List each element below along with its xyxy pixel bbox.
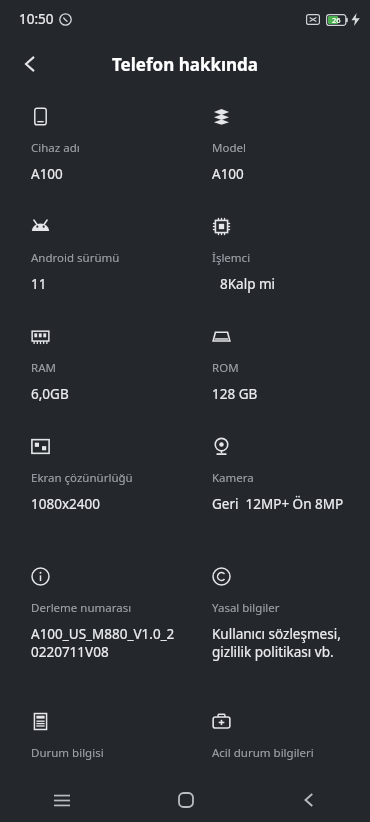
button[interactable]: Kamera	[212, 426, 362, 513]
staticText: 10:50	[19, 10, 54, 28]
staticText: İşlemci	[212, 250, 251, 266]
staticText: ROM	[212, 360, 239, 376]
button[interactable]: Ana ekran	[124, 778, 247, 822]
button[interactable]: Ekran çözünürlüğü	[31, 426, 177, 513]
staticText: Yasal bilgiler	[212, 600, 280, 616]
staticText: RAM	[31, 360, 56, 376]
staticText: 8Kalp mi	[220, 275, 276, 293]
staticText: A100	[212, 165, 244, 183]
staticText: Kamera	[212, 470, 254, 486]
staticText: Derleme numarası	[31, 600, 132, 616]
button[interactable]: ROM	[212, 316, 362, 403]
staticText: A100_US_M880_V1.0_20220711V08	[31, 625, 177, 661]
button[interactable]: Android sürümü	[31, 206, 177, 293]
button[interactable]: Cihaz adı	[31, 96, 177, 183]
button[interactable]: RAM	[31, 316, 177, 403]
staticText: Telefon hakkında	[112, 53, 259, 76]
staticText: 6,0GB	[31, 385, 69, 403]
button[interactable]: Son uygulamalar	[0, 778, 124, 822]
button[interactable]: Acil durum bilgileri	[212, 701, 362, 761]
staticText: 1080x2400	[31, 495, 100, 513]
button[interactable]: Geri	[8, 42, 52, 86]
staticText: Kullanıcı sözleşmesi, gizlilik politikas…	[212, 625, 362, 661]
button[interactable]: İşlemci	[212, 206, 362, 293]
staticText: Durum bilgisi	[31, 745, 104, 761]
staticText: Android sürümü	[31, 250, 120, 266]
staticText: 11	[31, 275, 47, 293]
staticText: A100	[31, 165, 63, 183]
staticText: Acil durum bilgileri	[212, 745, 314, 761]
staticText: Ekran çözünürlüğü	[31, 470, 133, 486]
staticText: 26	[332, 15, 341, 25]
staticText: Cihaz adı	[31, 140, 80, 156]
button[interactable]: Model	[212, 96, 362, 183]
staticText: Geri 12MP+ Ön 8MP	[212, 495, 344, 513]
staticText: 128 GB	[212, 385, 258, 403]
button[interactable]: Yasal bilgiler	[212, 556, 362, 661]
staticText: Model	[212, 140, 246, 156]
button[interactable]: Derleme numarası	[31, 556, 177, 661]
button[interactable]: Geri	[247, 778, 370, 822]
button[interactable]: Durum bilgisi	[31, 701, 177, 761]
